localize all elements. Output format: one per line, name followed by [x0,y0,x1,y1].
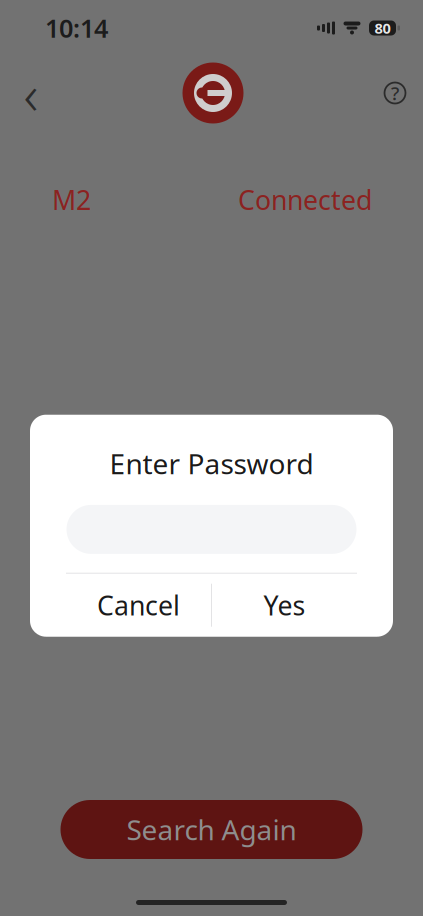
staticText: Cancel [97,587,180,623]
staticText: ‹ [23,56,38,130]
staticText: M2 [52,182,91,217]
staticText: Enter Password [109,445,313,482]
staticText: Search Again [126,811,296,848]
button[interactable]: Back [9,71,53,115]
staticText: ? [391,81,399,105]
staticText: Connected [238,182,372,217]
staticText: 80 [374,18,390,38]
button[interactable]: Yes [212,574,357,637]
button[interactable]: Cancel [66,574,211,637]
staticText: 10:14 [45,11,108,45]
staticText: Yes [263,587,305,623]
button[interactable]: Search Again [60,800,362,859]
button[interactable]: Help [373,71,417,115]
